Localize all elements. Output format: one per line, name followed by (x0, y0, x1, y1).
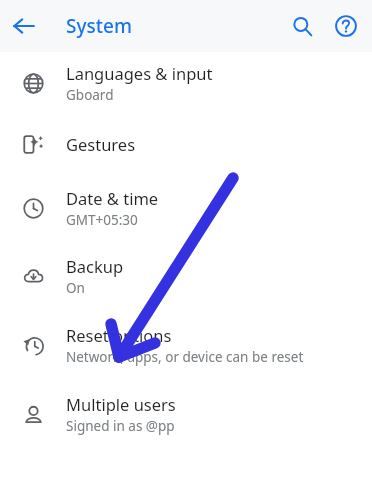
button[interactable]: Gestures (0, 114, 372, 174)
staticText: Gboard (66, 86, 114, 104)
staticText: Multiple users (66, 393, 176, 415)
staticText: Backup (66, 255, 124, 277)
button[interactable]: Languages & input (0, 52, 372, 114)
staticText: Reset options (66, 324, 172, 346)
staticText: Signed in as @pp (66, 417, 175, 435)
staticText: System (66, 13, 132, 39)
button[interactable]: Back (0, 2, 48, 50)
staticText: Network, apps, or device can be reset (66, 348, 304, 366)
staticText: On (66, 279, 85, 297)
button[interactable]: Help (324, 4, 368, 48)
staticText: Date & time (66, 187, 159, 209)
staticText: Languages & input (66, 62, 213, 84)
button[interactable]: Multiple users (0, 380, 372, 448)
button[interactable]: Reset options (0, 310, 372, 380)
staticText: Gestures (66, 133, 136, 155)
staticText: GMT+05:30 (66, 211, 138, 229)
button[interactable]: Backup (0, 242, 372, 310)
button[interactable]: Search (280, 4, 324, 48)
button[interactable]: Date & time (0, 174, 372, 242)
